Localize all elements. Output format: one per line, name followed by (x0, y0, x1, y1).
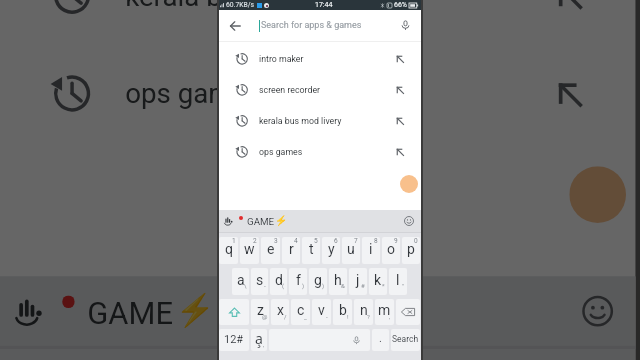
staticText: z (257, 302, 264, 318)
button[interactable]: kerala bus mod livery (218, 105, 421, 136)
button[interactable]: Space (269, 329, 370, 351)
button[interactable]: d (270, 268, 287, 295)
button[interactable]: f (289, 268, 307, 295)
staticText: . (379, 332, 382, 345)
staticText: GAME (87, 295, 176, 330)
button[interactable]: b (333, 299, 352, 325)
button[interactable]: k (369, 268, 387, 295)
button[interactable]: t (302, 237, 320, 264)
button[interactable]: Back (218, 10, 251, 41)
button[interactable]: m (375, 299, 394, 325)
staticText: q (225, 241, 233, 257)
staticText: 3 (274, 237, 278, 245)
staticText: 6 (334, 237, 338, 245)
button[interactable]: Fill query kerala bus mod livery (390, 111, 410, 131)
staticText: r (289, 241, 294, 257)
button[interactable]: a (232, 268, 249, 295)
button[interactable]: v (312, 299, 331, 325)
staticText: 9 (394, 237, 398, 245)
staticText: d (275, 272, 283, 288)
button[interactable]: kerala bus mod livery (0, 0, 635, 43)
staticText: ops games (125, 78, 264, 110)
staticText: u (347, 241, 355, 257)
button[interactable]: Fill query kerala bus mod livery (538, 0, 601, 28)
staticText: , (263, 341, 265, 348)
button[interactable]: 12# (219, 329, 249, 351)
staticText: w (244, 241, 255, 257)
staticText: s (256, 272, 264, 288)
button[interactable]: n (354, 299, 373, 325)
staticText: _ (304, 313, 307, 320)
staticText: n (360, 302, 368, 318)
staticText: t (309, 241, 314, 257)
button[interactable]: g (309, 268, 327, 295)
staticText: 12# (224, 333, 244, 346)
button[interactable]: Emoji (566, 280, 629, 343)
staticText: # (361, 282, 365, 289)
button[interactable]: Shift (219, 299, 249, 325)
button[interactable]: q (219, 237, 238, 264)
staticText: v (318, 302, 325, 318)
button[interactable]: . (372, 329, 389, 351)
button[interactable]: ops games (0, 43, 635, 141)
button[interactable]: screen recorder (218, 74, 421, 105)
button[interactable]: p (402, 237, 420, 264)
button[interactable]: e (261, 237, 280, 264)
button[interactable]: s (251, 268, 268, 295)
button[interactable]: j (349, 268, 367, 295)
staticText: 0 (414, 237, 418, 245)
button[interactable]: Backspace (396, 299, 420, 325)
button[interactable]: z (251, 299, 269, 325)
staticText: f (296, 272, 301, 288)
staticText: h (334, 272, 342, 288)
staticText: j (356, 272, 360, 288)
staticText: e (267, 241, 275, 257)
button[interactable]: u (342, 237, 360, 264)
staticText: p (407, 241, 415, 257)
button[interactable]: w (240, 237, 259, 264)
staticText: c (297, 302, 305, 318)
button[interactable]: a̧ (251, 329, 267, 351)
button[interactable]: c (291, 299, 310, 325)
staticText: b (339, 302, 347, 318)
staticText: g (314, 272, 322, 288)
button[interactable]: Emoji (399, 211, 419, 231)
button[interactable]: Fill query intro maker (390, 49, 410, 69)
staticText: \ (244, 282, 247, 289)
staticText: kerala bus mod livery (125, 0, 387, 12)
staticText: 60.7KB/s (226, 1, 255, 9)
staticText: 1 (232, 237, 236, 245)
staticText: " (402, 282, 404, 289)
button[interactable]: o (382, 237, 400, 264)
staticText: / (284, 313, 287, 320)
button[interactable]: x (271, 299, 289, 325)
staticText: ! (347, 313, 349, 320)
staticText: * (382, 282, 385, 289)
button[interactable]: i (362, 237, 380, 264)
button[interactable]: Voice search (393, 10, 417, 41)
staticText: l (396, 272, 400, 288)
staticText: 7 (354, 237, 358, 245)
staticText: ops games (259, 147, 303, 157)
button[interactable]: y (322, 237, 340, 264)
staticText: screen recorder (259, 85, 321, 95)
button[interactable]: h (329, 268, 347, 295)
button[interactable]: r (282, 237, 300, 264)
staticText: Search for apps & games (261, 20, 362, 31)
staticText: 8 (374, 237, 378, 245)
button[interactable]: Fill query ops games (390, 142, 410, 162)
button[interactable]: Fill query screen recorder (390, 80, 410, 100)
button[interactable]: intro maker (218, 43, 421, 74)
staticText: & (341, 282, 345, 289)
button[interactable]: Fill query ops games (538, 62, 601, 125)
staticText: , (389, 313, 391, 320)
staticText: - (264, 282, 266, 289)
staticText: intro maker (259, 54, 304, 64)
button[interactable]: Search (391, 329, 420, 351)
staticText: x (277, 302, 284, 318)
staticText: ) (302, 282, 305, 289)
staticText: 5 (314, 237, 318, 245)
button[interactable]: ops games (218, 136, 421, 167)
button[interactable]: l (389, 268, 407, 295)
staticText: kerala bus mod livery (259, 116, 342, 126)
